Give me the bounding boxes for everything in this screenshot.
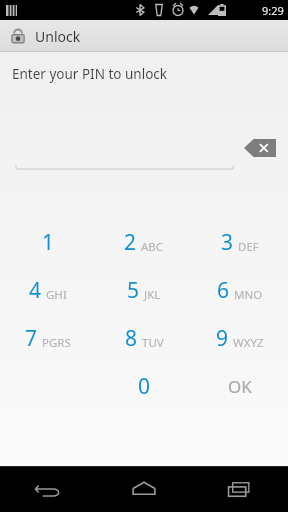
staticText: JKL <box>144 287 161 303</box>
staticText: 1 <box>42 228 55 257</box>
staticText: 4 <box>29 276 42 305</box>
button[interactable]: 3 <box>192 218 288 266</box>
staticText: ABC <box>141 239 164 255</box>
staticText: OK <box>228 375 252 398</box>
button[interactable]: 8 <box>96 314 192 362</box>
button[interactable]: Delete <box>244 139 276 157</box>
button[interactable]: OK <box>192 362 288 410</box>
staticText: Unlock <box>35 27 81 46</box>
staticText: 5 <box>127 276 140 305</box>
staticText: WXYZ <box>233 335 264 351</box>
staticText: 9:29 <box>262 3 284 18</box>
staticText: 6 <box>217 276 230 305</box>
staticText: PGRS <box>42 335 71 351</box>
staticText: GHI <box>46 287 67 303</box>
staticText: 0 <box>138 372 151 401</box>
button[interactable]: 1 <box>0 218 96 266</box>
staticText: MNO <box>234 287 263 303</box>
button[interactable]: 6 <box>192 266 288 314</box>
button[interactable]: 9 <box>192 314 288 362</box>
button[interactable]: 7 <box>0 314 96 362</box>
staticText: 8 <box>125 324 138 353</box>
staticText: 9 <box>216 324 229 353</box>
staticText: DEF <box>238 239 259 255</box>
button[interactable]: 0 <box>96 362 192 410</box>
button[interactable]: 4 <box>0 266 96 314</box>
button[interactable]: 2 <box>96 218 192 266</box>
staticText: TUV <box>142 335 164 351</box>
button[interactable]: Recent apps <box>192 466 288 512</box>
button[interactable]: Back <box>0 466 96 512</box>
button[interactable]: 5 <box>96 266 192 314</box>
staticText: 2 <box>124 228 137 257</box>
staticText: 7 <box>25 324 38 353</box>
staticText: Enter your PIN to unlock <box>12 65 167 83</box>
button[interactable]: Home <box>96 466 192 512</box>
staticText: 3 <box>221 228 234 257</box>
